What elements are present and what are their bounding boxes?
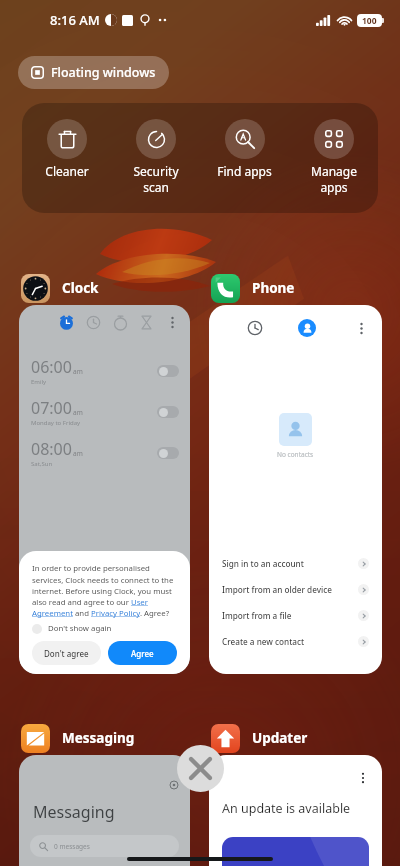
staticText: Sign in to an account (222, 558, 304, 569)
staticText: Floating windows (51, 64, 156, 81)
button[interactable]: Messaging (21, 721, 135, 755)
button[interactable]: Cleaner (22, 103, 111, 213)
button[interactable] (157, 406, 179, 418)
staticText: Don't show again (48, 623, 112, 634)
button[interactable]: Close all (177, 745, 224, 792)
button[interactable]: 0 messages (30, 835, 179, 857)
staticText: 0 messages (54, 842, 90, 851)
button[interactable]: Find apps (200, 103, 289, 213)
button[interactable]: No contacts (209, 305, 382, 674)
staticText: am (73, 408, 83, 417)
staticText: Updater (252, 729, 308, 747)
button[interactable]: Don't show again (32, 623, 112, 634)
button[interactable]: An update is available (209, 755, 382, 866)
staticText: am (73, 449, 83, 458)
staticText: Don't agree (44, 648, 89, 659)
staticText: In order to provide personalised service… (32, 563, 177, 618)
button[interactable]: Agree (108, 641, 177, 665)
staticText: Monday to Friday (31, 419, 81, 427)
button[interactable]: Updater (211, 721, 308, 755)
staticText: Create a new contact (222, 636, 305, 647)
staticText: 07:00 (31, 397, 72, 419)
staticText: Emily (31, 378, 47, 386)
button[interactable]: Messaging (19, 755, 190, 866)
button[interactable]: Security scan (111, 103, 200, 213)
staticText: 06:00 (31, 356, 72, 378)
button[interactable]: Import from a file (209, 602, 382, 628)
staticText: Security scan (133, 163, 179, 196)
staticText: An update is available (222, 800, 351, 817)
button[interactable] (157, 365, 179, 377)
button[interactable]: Phone (211, 271, 295, 305)
staticText: 08:00 (31, 438, 72, 460)
staticText: Find apps (217, 163, 272, 179)
staticText: am (73, 367, 83, 376)
staticText: 8:16 AM (50, 11, 100, 29)
staticText: 100 (362, 15, 377, 27)
button[interactable]: Don't agree (32, 641, 101, 665)
button[interactable]: Floating windows (18, 56, 169, 89)
staticText: Messaging (62, 729, 135, 747)
staticText: Import from a file (222, 610, 292, 621)
button[interactable]: Create a new contact (209, 628, 382, 654)
staticText: Messaging (33, 801, 115, 823)
button[interactable]: 06:00 (19, 305, 190, 674)
staticText: Manage apps (311, 163, 357, 196)
staticText: Clock (62, 279, 99, 297)
button[interactable]: Sign in to an account (209, 550, 382, 576)
button[interactable]: Import from an older device (209, 576, 382, 602)
staticText: No contacts (277, 450, 314, 459)
button[interactable]: Clock (21, 271, 99, 305)
staticText: Phone (252, 279, 295, 297)
button[interactable] (157, 447, 179, 459)
staticText: Sat,Sun (31, 460, 53, 468)
button[interactable]: Manage apps (289, 103, 378, 213)
staticText: Cleaner (45, 163, 89, 179)
staticText: Import from an older device (222, 584, 332, 595)
staticText: Agree (131, 648, 154, 659)
